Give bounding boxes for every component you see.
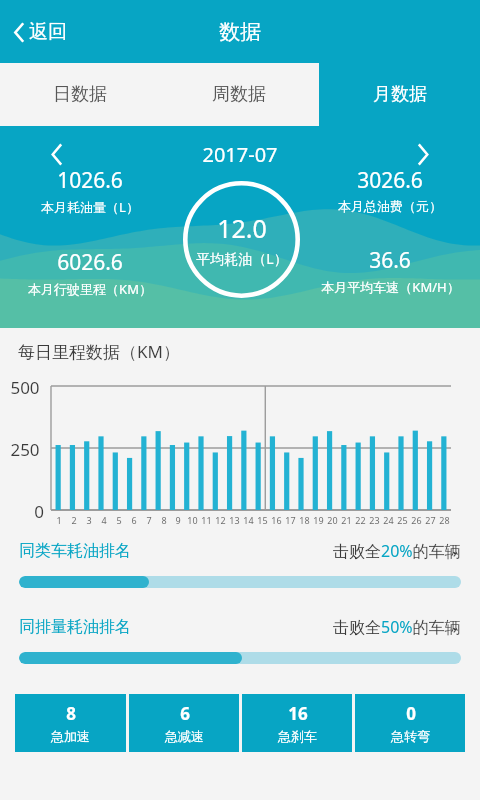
staticText: 同排量耗油排名 [19, 617, 131, 637]
button[interactable]: 下一月 [410, 136, 436, 173]
staticText: 250 [10, 438, 40, 461]
staticText: 6 [180, 702, 190, 725]
staticText: 2 [71, 514, 77, 526]
staticText: 28 [439, 514, 450, 526]
staticText: 本月行驶里程（KM） [28, 280, 152, 298]
button[interactable]: 日数据 [0, 63, 159, 126]
staticText: 24 [383, 514, 394, 526]
staticText: 6026.6 [57, 248, 123, 277]
staticText: 17 [285, 514, 296, 526]
staticText: 月数据 [373, 83, 427, 106]
staticText: 8 [161, 514, 167, 526]
staticText: 本月平均车速（KM/H） [321, 278, 460, 296]
staticText: 0 [34, 500, 44, 523]
staticText: 4 [101, 514, 107, 526]
button[interactable]: 月数据 [319, 63, 480, 126]
button[interactable]: 周数据 [159, 63, 319, 126]
staticText: 0 [406, 702, 416, 725]
staticText: 16 [271, 514, 282, 526]
staticText: 急加速 [51, 728, 90, 744]
staticText: 击败全20%的车辆 [333, 540, 461, 562]
staticText: 12 [215, 514, 226, 526]
staticText: 26 [411, 514, 422, 526]
staticText: 7 [146, 514, 152, 526]
staticText: 12.0 [217, 211, 267, 245]
button[interactable]: 0 [355, 694, 465, 752]
staticText: 1026.6 [57, 166, 123, 195]
staticText: 3 [86, 514, 92, 526]
staticText: 20 [327, 514, 338, 526]
staticText: 6 [131, 514, 137, 526]
staticText: 急减速 [165, 728, 204, 744]
button[interactable]: 返回 [8, 12, 73, 52]
staticText: 36.6 [369, 246, 411, 275]
staticText: 3026.6 [357, 166, 423, 195]
staticText: 21 [341, 514, 352, 526]
staticText: 每日里程数据（KM） [18, 340, 180, 363]
staticText: 14 [243, 514, 254, 526]
staticText: 23 [369, 514, 380, 526]
staticText: 本月总油费（元） [338, 198, 442, 214]
button[interactable]: 16 [242, 694, 352, 752]
button[interactable]: 上一月 [44, 136, 70, 173]
staticText: 急转弯 [391, 728, 430, 744]
staticText: 500 [10, 376, 40, 399]
staticText: 27 [425, 514, 436, 526]
staticText: 周数据 [212, 83, 266, 106]
staticText: 11 [201, 514, 212, 526]
staticText: 日数据 [53, 83, 107, 106]
staticText: 击败全50%的车辆 [333, 616, 461, 638]
button[interactable]: 8 [15, 694, 126, 752]
button[interactable]: 同排量耗油排名 [0, 616, 480, 664]
staticText: 10 [187, 514, 198, 526]
staticText: 9 [175, 514, 181, 526]
staticText: 平均耗油（L） [196, 249, 288, 268]
staticText: 19 [313, 514, 324, 526]
button[interactable]: 同类车耗油排名 [0, 540, 480, 588]
staticText: 22 [355, 514, 366, 526]
button[interactable]: 6 [129, 694, 239, 752]
staticText: 13 [229, 514, 240, 526]
staticText: 本月耗油量（L） [41, 198, 139, 216]
staticText: 1 [56, 514, 62, 526]
staticText: 数据 [219, 19, 261, 45]
staticText: 18 [299, 514, 310, 526]
staticText: 25 [397, 514, 408, 526]
staticText: 8 [66, 702, 76, 725]
staticText: 2017-07 [202, 141, 278, 168]
staticText: 急刹车 [278, 728, 317, 744]
staticText: 同类车耗油排名 [19, 541, 131, 561]
staticText: 15 [257, 514, 268, 526]
staticText: 5 [116, 514, 122, 526]
staticText: 16 [288, 702, 308, 725]
staticText: 返回 [29, 20, 67, 44]
